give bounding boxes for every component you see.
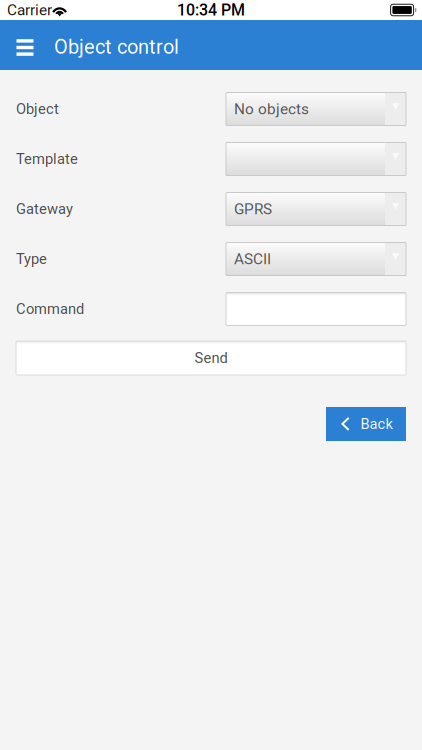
button[interactable]: Menu (8, 20, 42, 70)
staticText: Template (16, 150, 78, 168)
staticText: 10:34 PM (177, 1, 245, 19)
button[interactable]: No objects (226, 92, 406, 125)
staticText: Type (16, 250, 47, 268)
staticText: GPRS (234, 200, 272, 218)
staticText: Gateway (16, 200, 73, 218)
button[interactable]: Send (0, 341, 422, 375)
staticText: Carrier (7, 1, 52, 19)
button[interactable]: GPRS (226, 192, 406, 225)
staticText: Back (360, 415, 392, 433)
staticText: No objects (234, 100, 309, 118)
staticText: ASCII (234, 250, 271, 268)
button[interactable]: Command text field (226, 292, 406, 325)
staticText: Object control (54, 35, 179, 59)
staticText: Object (16, 100, 59, 118)
button[interactable] (226, 142, 406, 175)
button[interactable]: ASCII (226, 242, 406, 275)
button[interactable]: Back (326, 407, 406, 441)
staticText: Send (194, 349, 227, 367)
staticText: Command (16, 300, 84, 318)
